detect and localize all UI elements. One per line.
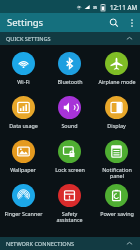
staticText: Power saving <box>100 210 134 217</box>
staticText: Finger Scanner <box>4 210 43 217</box>
staticText: Data usage <box>9 122 38 129</box>
button[interactable]: Finger Scanner <box>0 181 46 217</box>
staticText: Sound <box>61 122 78 129</box>
button[interactable]: Bluetooth <box>46 49 93 85</box>
staticText: Bluetooth <box>57 78 83 85</box>
button[interactable]: NETWORK CONNECTIONS <box>0 237 140 250</box>
button[interactable]: Lock screen <box>46 137 93 173</box>
staticText: Settings <box>7 16 44 29</box>
staticText: Airplane mode <box>98 78 136 85</box>
button[interactable]: Sound <box>46 93 93 129</box>
button[interactable]: Notification panel <box>93 137 140 180</box>
button[interactable]: More options <box>123 14 140 31</box>
button[interactable]: Search <box>104 13 123 32</box>
staticText: QUICK SETTINGS <box>6 35 51 43</box>
button[interactable]: QUICK SETTINGS <box>0 32 140 45</box>
staticText: 12:11 AM <box>110 3 137 11</box>
staticText: Lock screen <box>55 166 85 173</box>
button[interactable]: Data usage <box>0 93 46 129</box>
button[interactable]: Power saving <box>93 181 140 217</box>
button[interactable]: Wi-Fi <box>0 49 46 85</box>
button[interactable]: Wallpaper <box>0 137 46 173</box>
staticText: NETWORK CONNECTIONS <box>6 240 75 248</box>
button[interactable]: Airplane mode <box>93 49 140 85</box>
staticText: Display <box>107 122 126 129</box>
staticText: Wi-Fi <box>17 78 30 85</box>
staticText: 35 <box>93 5 98 10</box>
staticText: Wallpaper <box>10 166 36 173</box>
button[interactable]: Display <box>93 93 140 129</box>
staticText: Notification panel <box>102 166 132 180</box>
button[interactable]: Safety assistance <box>46 181 93 224</box>
staticText: Safety assistance <box>56 210 83 224</box>
